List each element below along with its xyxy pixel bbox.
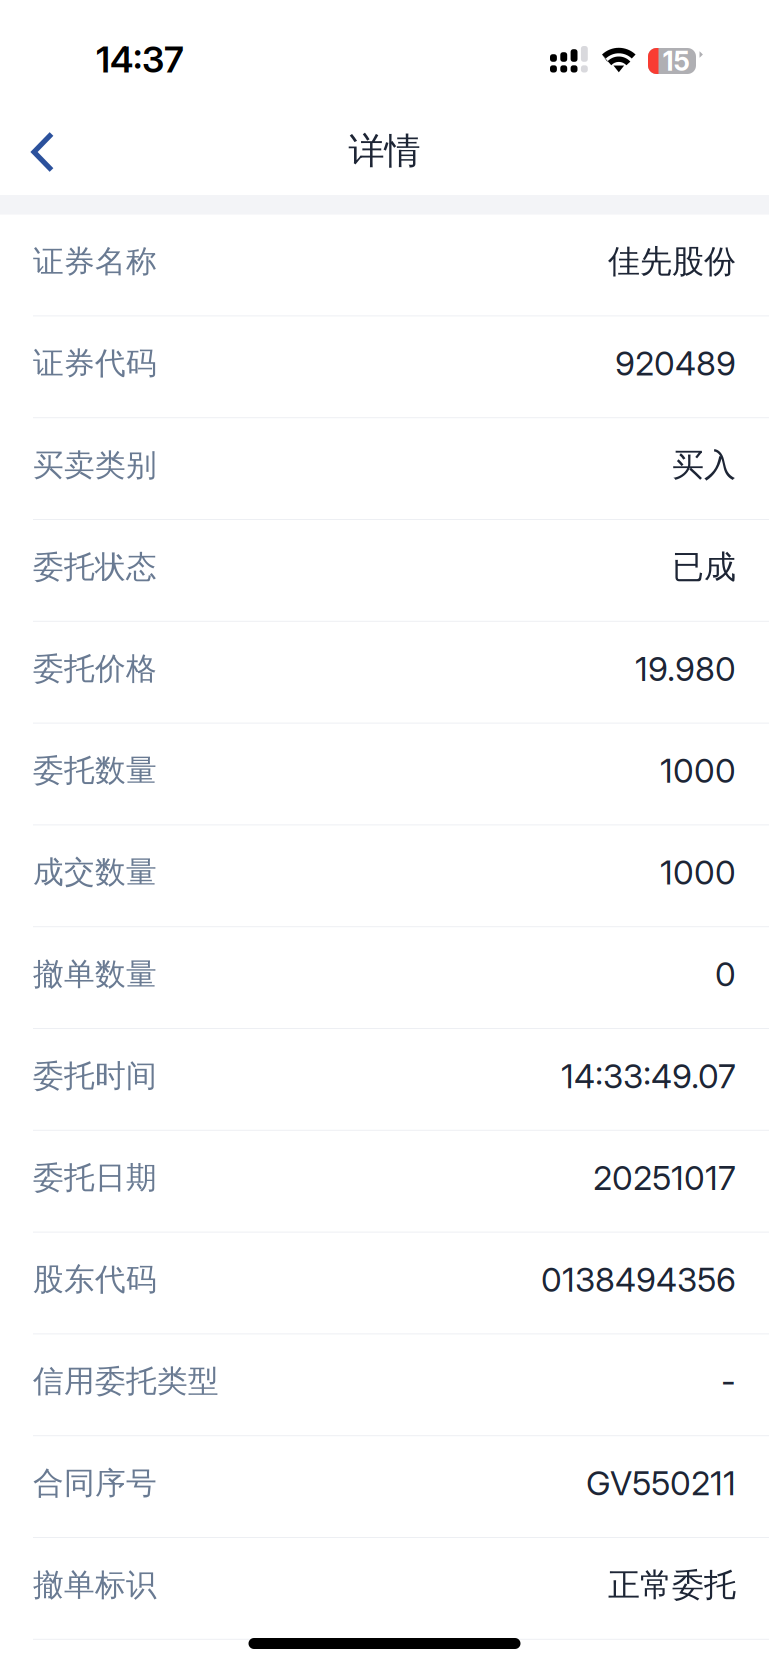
staticText: 合同序号	[33, 1464, 157, 1502]
staticText: 委托数量	[33, 751, 157, 790]
staticText: 1000	[660, 750, 736, 791]
staticText: 成交数量	[33, 853, 157, 892]
staticText: 买入	[672, 445, 736, 485]
staticText: 证券名称	[33, 242, 157, 281]
staticText: 委托状态	[33, 548, 157, 586]
staticText: 0	[715, 954, 736, 994]
staticText: 佳先股份	[608, 241, 736, 282]
staticText: 正常委托	[608, 1565, 736, 1605]
staticText: 14:33:49.07	[561, 1056, 736, 1096]
staticText: 撤单标识	[33, 1566, 157, 1604]
staticText: 20251017	[593, 1158, 736, 1198]
staticText: 1000	[660, 852, 736, 892]
staticText: 撤单数量	[33, 955, 157, 993]
staticText: 信用委托类型	[33, 1362, 219, 1401]
staticText: 股东代码	[33, 1260, 157, 1299]
staticText: 委托价格	[33, 649, 157, 688]
staticText: 已成	[672, 547, 736, 587]
staticText: 详情	[348, 128, 420, 174]
staticText: 920489	[615, 343, 736, 383]
staticText: 买卖类别	[33, 446, 157, 484]
staticText: GV550211	[586, 1463, 736, 1503]
staticText: 15	[662, 45, 689, 77]
staticText: -	[721, 1361, 736, 1401]
staticText: 0138494356	[541, 1259, 736, 1300]
staticText: 委托日期	[33, 1158, 157, 1197]
staticText: 证券代码	[33, 344, 157, 383]
staticText: 委托时间	[33, 1057, 157, 1095]
button[interactable]: Back	[0, 96, 90, 192]
staticText: 19.980	[635, 649, 736, 689]
staticText: 14:37	[96, 38, 184, 81]
